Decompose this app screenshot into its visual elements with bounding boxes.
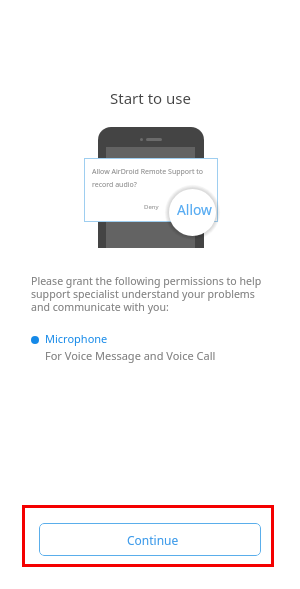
- staticText: Start to use: [110, 88, 191, 108]
- staticText: Allow AirDroid Remote Support to record …: [92, 167, 204, 189]
- staticText: For Voice Message and Voice Call: [45, 348, 216, 363]
- staticText: Please grant the following permissions t…: [31, 274, 263, 314]
- button[interactable]: Continue: [39, 523, 261, 556]
- staticText: Continue: [127, 532, 179, 548]
- staticText: Microphone: [45, 331, 108, 346]
- other: Grant microphone permission illustration: [84, 127, 224, 248]
- staticText: Allow: [177, 200, 212, 219]
- button[interactable]: Microphone: [28, 329, 228, 365]
- staticText: Deny: [144, 203, 159, 211]
